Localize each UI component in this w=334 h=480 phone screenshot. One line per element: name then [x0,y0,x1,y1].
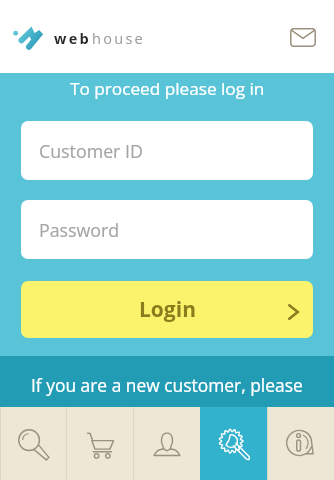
staticText: house [92,29,146,49]
button[interactable]: Messages [284,18,322,56]
staticText: web [54,29,92,49]
button[interactable]: Info [267,407,334,480]
staticText: Login [139,295,196,324]
staticText: Password [39,218,120,242]
button[interactable]: Customer ID [21,121,313,180]
button[interactable]: Login [21,281,313,338]
button[interactable]: Search [0,407,66,480]
staticText: To proceed please log in [70,77,265,100]
button[interactable]: Settings [200,407,267,480]
button[interactable]: Account [133,407,200,480]
button[interactable]: Password [21,200,313,259]
button[interactable]: Cart [66,407,133,480]
staticText: If you are a new customer, please [31,373,303,397]
staticText: Customer ID [39,139,143,163]
